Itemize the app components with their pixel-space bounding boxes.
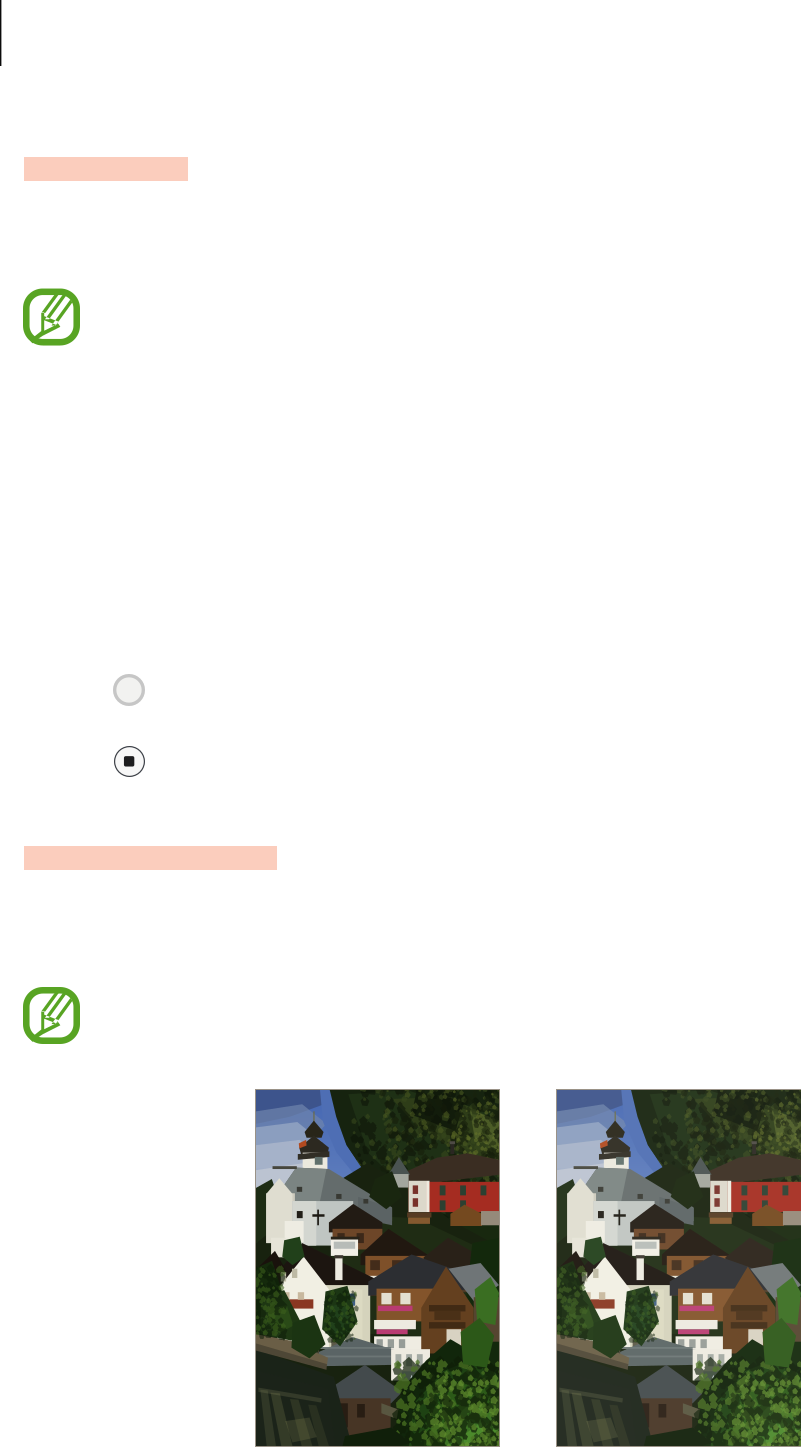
button[interactable]: Take picture bbox=[113, 674, 145, 706]
button[interactable]: Note bbox=[23, 288, 80, 345]
button[interactable]: Note bbox=[23, 987, 80, 1044]
button[interactable]: Stop recording bbox=[114, 746, 145, 777]
